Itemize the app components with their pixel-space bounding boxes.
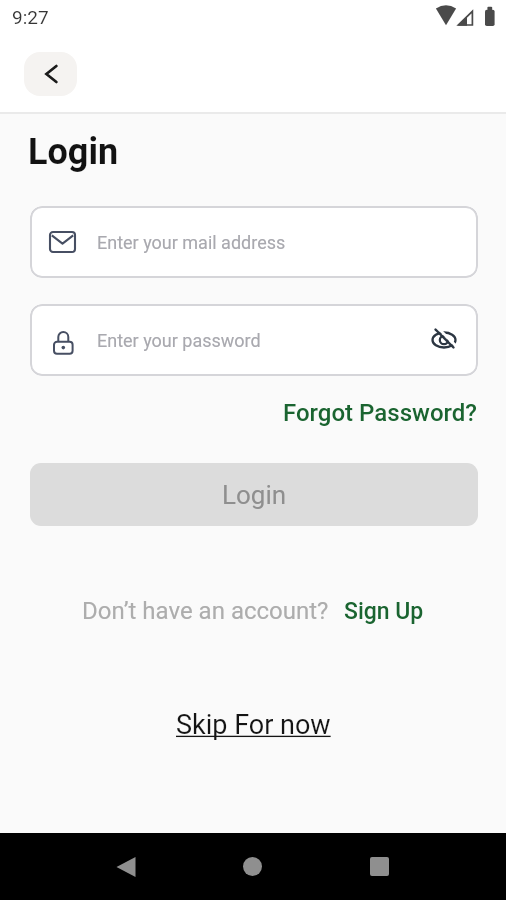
button[interactable] xyxy=(24,52,77,96)
button[interactable] xyxy=(316,833,443,900)
button[interactable]: Enter your mail address xyxy=(30,206,478,278)
staticText: Don’t have an account? xyxy=(82,597,329,625)
staticText: Login xyxy=(222,480,287,510)
button[interactable]: Login xyxy=(30,463,478,526)
button[interactable]: Forgot Password? xyxy=(283,399,478,427)
button[interactable] xyxy=(63,833,189,900)
button[interactable]: Sign Up xyxy=(344,598,424,625)
staticText: Login xyxy=(28,131,119,173)
staticText: 9:27 xyxy=(12,6,49,28)
staticText: Enter your mail address xyxy=(97,232,286,253)
button[interactable] xyxy=(189,833,316,900)
button[interactable] xyxy=(428,324,460,356)
staticText: Enter your password xyxy=(97,330,261,351)
button[interactable]: Enter your password xyxy=(30,304,478,376)
button[interactable]: Skip For now xyxy=(176,709,331,741)
